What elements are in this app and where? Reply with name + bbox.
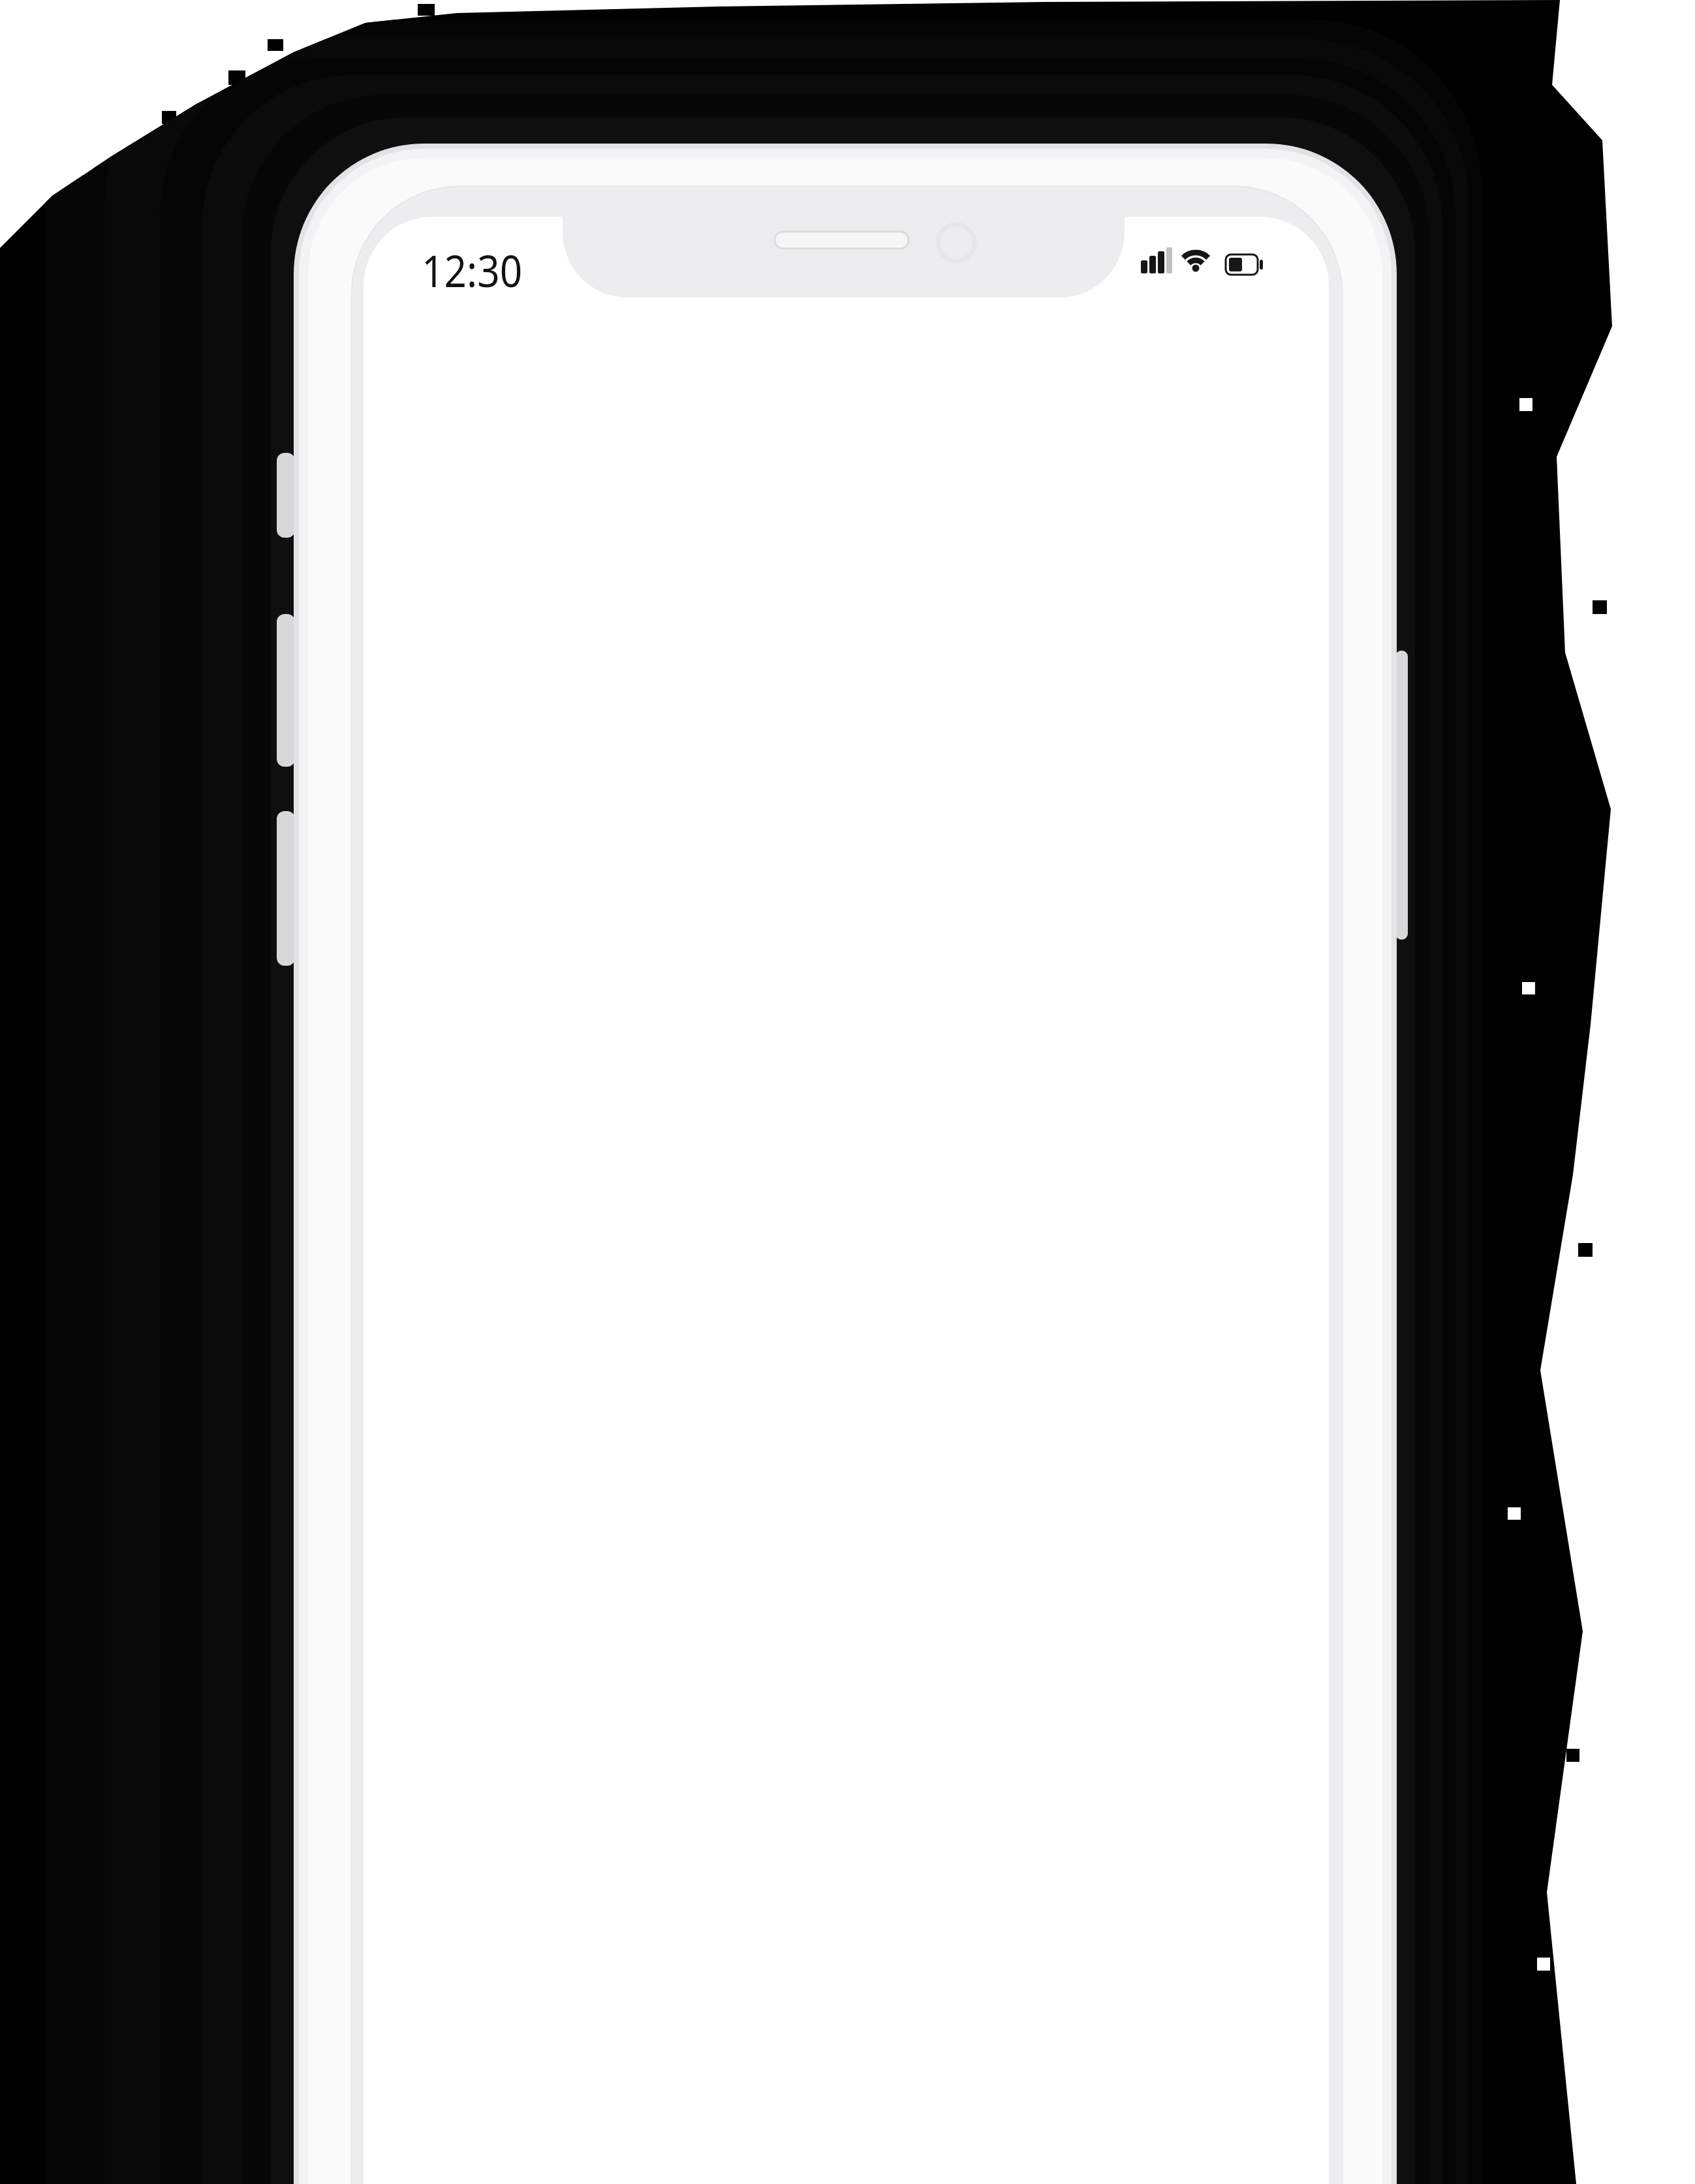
staticText: 12:30 (422, 240, 523, 300)
